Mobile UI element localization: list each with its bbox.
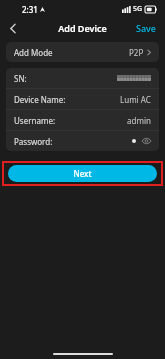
staticText: P2P	[129, 47, 144, 58]
button[interactable]: Save	[128, 18, 165, 38]
button[interactable]: Next	[8, 165, 157, 182]
staticText: Save	[136, 22, 157, 34]
staticText: admin	[127, 115, 151, 126]
button[interactable]: Password:	[6, 131, 159, 151]
staticText: Lumi AC	[120, 94, 151, 105]
button[interactable]: SN:	[6, 68, 159, 88]
staticText: Username:	[14, 115, 56, 126]
staticText: SN:	[14, 73, 27, 84]
button[interactable]: Back	[0, 18, 26, 38]
staticText: Add Mode	[14, 47, 53, 58]
button[interactable]: Show password	[141, 136, 151, 146]
staticText: Password:	[14, 136, 53, 147]
button[interactable]: Add Mode	[6, 42, 159, 62]
staticText: 2:31	[22, 4, 38, 15]
staticText: Device Name:	[14, 94, 66, 105]
staticText: Next	[73, 168, 92, 179]
button[interactable]: Device Name:	[6, 89, 159, 109]
staticText: 5G	[133, 4, 143, 14]
button[interactable]: Username:	[6, 110, 159, 130]
staticText: Add Device	[58, 22, 107, 34]
